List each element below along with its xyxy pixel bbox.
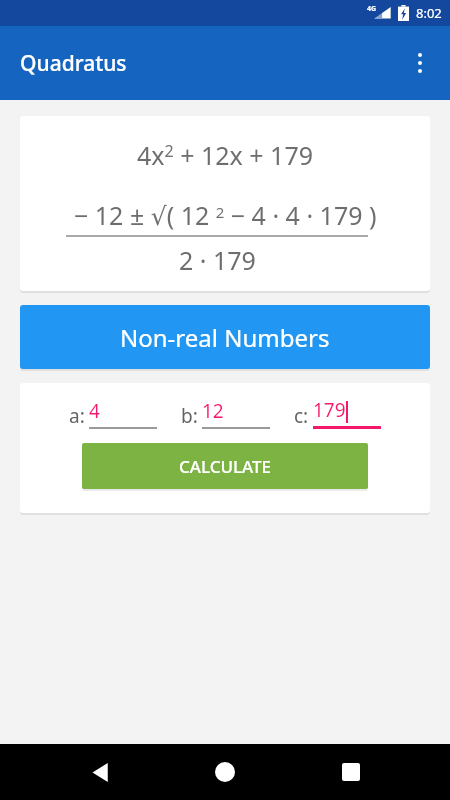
staticText: 179: [313, 397, 346, 423]
button[interactable]: Non-real Numbers: [20, 305, 430, 369]
button[interactable]: More options: [396, 39, 444, 87]
button[interactable]: Back: [74, 746, 126, 798]
button[interactable]: c:: [294, 397, 381, 429]
button[interactable]: 4x2 + 12x + 179: [20, 116, 430, 291]
button[interactable]: b:: [181, 398, 270, 429]
staticText: Non-real Numbers: [120, 321, 330, 354]
button[interactable]: Recent apps: [325, 746, 377, 798]
staticText: b:: [181, 403, 198, 429]
button[interactable]: a:: [69, 398, 157, 429]
staticText: 4: [89, 398, 100, 424]
staticText: 8:02: [416, 4, 442, 22]
staticText: CALCULATE: [179, 455, 272, 478]
staticText: 4G: [367, 4, 377, 14]
button[interactable]: Home: [199, 746, 251, 798]
staticText: 4x2 + 12x + 179: [137, 138, 314, 172]
button[interactable]: CALCULATE: [82, 443, 368, 489]
staticText: c:: [294, 403, 309, 429]
staticText: 12: [202, 398, 224, 424]
staticText: − 12 ± √( 12 2 − 4 · 4 · 179 ): [74, 198, 377, 232]
staticText: Quadratus: [20, 49, 127, 78]
staticText: a:: [69, 403, 85, 429]
staticText: 2 · 179: [179, 243, 256, 277]
